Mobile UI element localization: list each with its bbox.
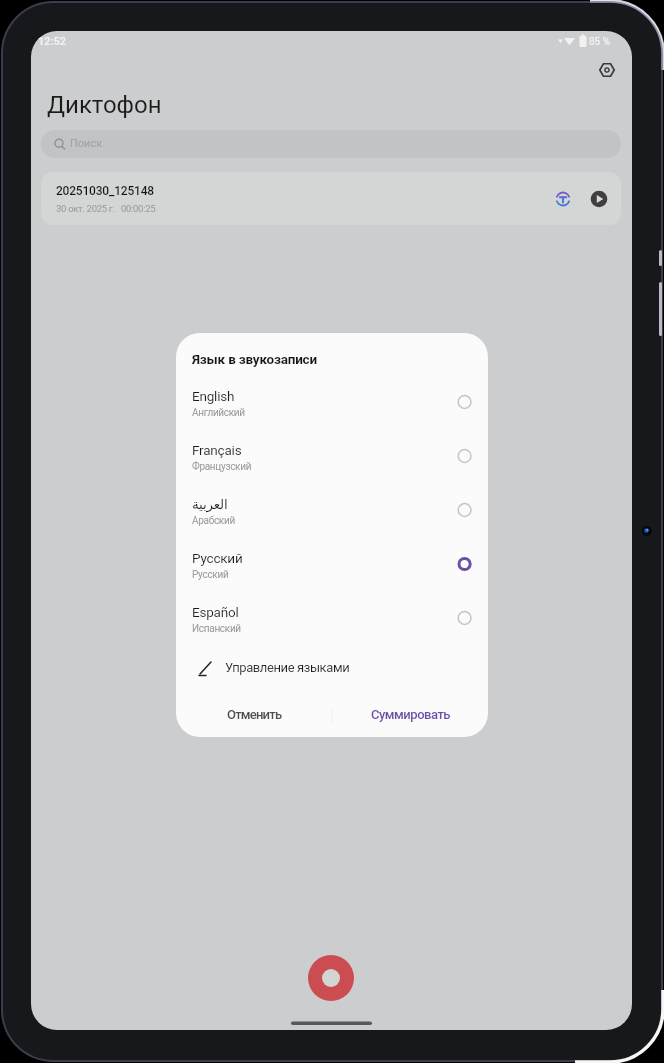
staticText: English <box>192 388 235 404</box>
staticText: Français <box>192 442 242 458</box>
staticText: 20251030_125148 <box>56 184 154 198</box>
staticText: Русский <box>192 550 243 566</box>
button[interactable] <box>549 185 577 213</box>
staticText: Поиск <box>70 137 103 150</box>
button[interactable]: Отменить <box>200 698 310 734</box>
staticText: Испанский <box>192 623 241 635</box>
button[interactable] <box>308 955 354 1001</box>
button[interactable]: Суммировать <box>354 698 464 734</box>
staticText: Español <box>192 604 239 620</box>
staticText: العربية <box>192 496 228 512</box>
staticText: Английский <box>192 407 245 419</box>
button[interactable]: English <box>176 375 488 429</box>
button[interactable]: Français <box>176 429 488 483</box>
button[interactable]: Español <box>176 591 488 645</box>
button[interactable] <box>585 185 613 213</box>
staticText: 85 % <box>589 36 611 48</box>
staticText: Арабский <box>192 515 235 527</box>
staticText: Французский <box>192 461 252 473</box>
button[interactable]: Поиск <box>41 130 621 158</box>
staticText: 00:00:25 <box>121 203 156 214</box>
staticText: 12:52 <box>38 35 66 48</box>
staticText: Диктофон <box>47 91 162 119</box>
button[interactable]: Русский <box>176 537 488 591</box>
staticText: Язык в звукозаписи <box>192 351 317 367</box>
staticText: Русский <box>192 569 229 581</box>
button[interactable]: Управление языками <box>176 648 488 688</box>
staticText: Управление языками <box>225 660 350 675</box>
staticText: Отменить <box>227 707 282 722</box>
staticText: 30 окт. 2025 г. <box>56 203 115 214</box>
button[interactable]: العربية <box>176 483 488 537</box>
staticText: Суммировать <box>371 707 450 722</box>
button[interactable]: 20251030_125148 <box>41 172 621 225</box>
button[interactable] <box>593 56 621 84</box>
